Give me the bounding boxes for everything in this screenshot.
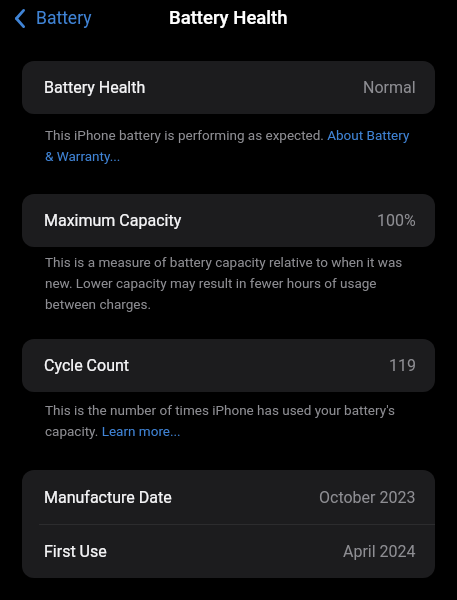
button[interactable]: Back to Battery	[0, 4, 102, 33]
button[interactable]: Cycle Count	[22, 339, 435, 392]
button[interactable]: Battery Health	[22, 61, 435, 114]
button[interactable]: First Use	[22, 525, 435, 578]
staticText: Normal	[363, 78, 416, 97]
button[interactable]: Manufacture Date	[22, 470, 435, 524]
button[interactable]: Maximum Capacity	[22, 194, 435, 247]
staticText: Battery	[36, 8, 92, 29]
staticText: 100%	[377, 211, 416, 230]
staticText: Battery Health	[169, 7, 288, 29]
staticText: October 2023	[319, 488, 416, 507]
staticText: First Use	[44, 542, 107, 561]
staticText: This is the number of times iPhone has u…	[45, 398, 415, 440]
staticText: This iPhone battery is performing as exp…	[45, 123, 415, 165]
staticText: April 2024	[343, 542, 416, 561]
staticText: This is a measure of battery capacity re…	[45, 250, 415, 313]
staticText: Battery Health	[44, 78, 146, 97]
staticText: 119	[389, 356, 416, 375]
staticText: Manufacture Date	[44, 488, 172, 507]
staticText: Maximum Capacity	[44, 211, 182, 230]
staticText: Cycle Count	[44, 356, 130, 375]
